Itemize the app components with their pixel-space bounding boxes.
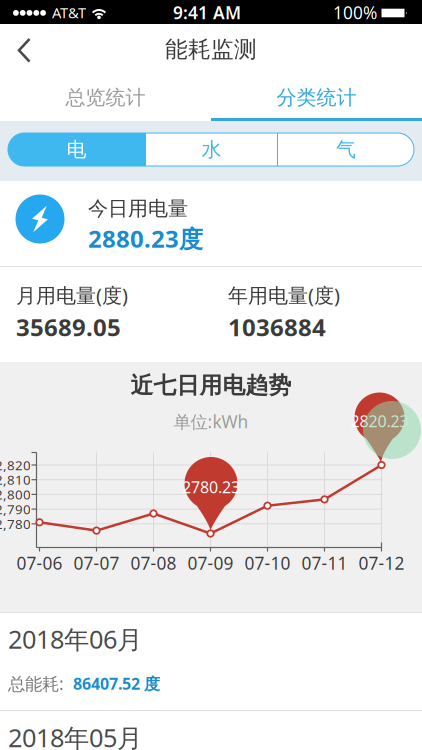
staticText: 2880.23度	[88, 223, 203, 254]
staticText: 9:41 AM	[173, 1, 241, 24]
staticText: 07-12	[358, 551, 404, 574]
staticText: 2,820	[0, 456, 31, 474]
staticText: 2,800	[0, 485, 31, 503]
staticText: 2018年06月	[8, 622, 142, 656]
staticText: 07-11	[301, 551, 347, 574]
staticText: 年用电量(度)	[228, 282, 340, 308]
staticText: 总览统计	[65, 85, 145, 110]
button[interactable]: 电	[8, 133, 145, 166]
staticText: 2820.23	[350, 410, 408, 432]
button[interactable]: 总览统计	[0, 74, 211, 121]
staticText: 2,810	[0, 471, 31, 488]
staticText: 总能耗:	[8, 672, 64, 695]
staticText: 07-07	[73, 551, 119, 574]
staticText: 电	[66, 137, 86, 162]
staticText: 近七日用电趋势	[130, 372, 291, 399]
staticText: 2,780	[0, 515, 31, 533]
staticText: 07-10	[244, 551, 290, 574]
staticText: 2,790	[0, 500, 31, 518]
staticText: 100%	[333, 1, 377, 24]
staticText: AT&T	[52, 3, 86, 22]
staticText: 能耗监测	[165, 36, 257, 63]
button[interactable]: 气	[278, 133, 414, 166]
button[interactable]: 水	[146, 133, 277, 166]
staticText: 2018年05月	[8, 721, 142, 750]
button[interactable]: Back	[0, 0, 48, 50]
staticText: 水	[201, 137, 221, 162]
staticText: 07-08	[130, 551, 176, 574]
staticText: 07-09	[187, 551, 233, 574]
staticText: 今日用电量	[88, 196, 188, 221]
button[interactable]: 2018年05月	[0, 711, 422, 750]
staticText: 月用电量(度)	[16, 282, 128, 308]
staticText: 07-06	[16, 551, 62, 574]
button[interactable]: 2018年06月	[0, 613, 422, 710]
staticText: 分类统计	[276, 85, 356, 110]
staticText: 1036884	[228, 311, 326, 343]
staticText: 86407.52 度	[73, 673, 160, 694]
button[interactable]: 分类统计	[211, 74, 422, 121]
staticText: 35689.05	[16, 311, 121, 343]
staticText: 气	[336, 137, 356, 162]
staticText: 2780.23	[182, 476, 240, 498]
staticText: 单位:kWh	[173, 410, 248, 433]
